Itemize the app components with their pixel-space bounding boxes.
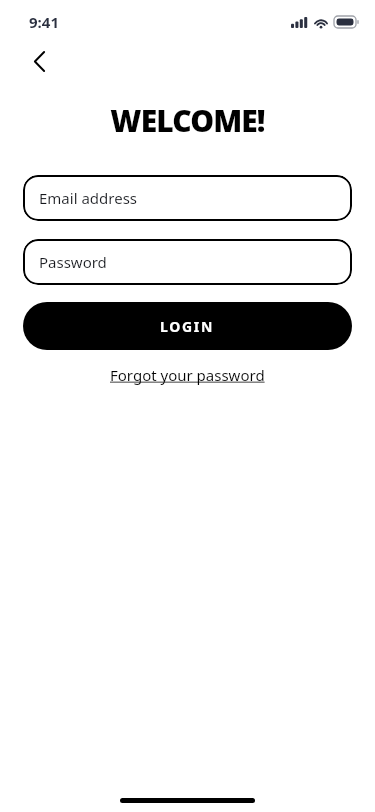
staticText: LOGIN (160, 317, 215, 336)
staticText: Email address (39, 188, 138, 208)
button[interactable]: Email address (23, 175, 352, 221)
staticText: Forgot your password (110, 365, 265, 385)
button[interactable]: Password (23, 239, 352, 285)
button[interactable]: Back (22, 44, 56, 78)
button[interactable]: Forgot your password (106, 362, 269, 388)
button[interactable]: LOGIN (23, 302, 352, 350)
staticText: 9:41 (29, 12, 59, 32)
staticText: Password (39, 252, 107, 272)
staticText: WELCOME! (0, 100, 375, 141)
